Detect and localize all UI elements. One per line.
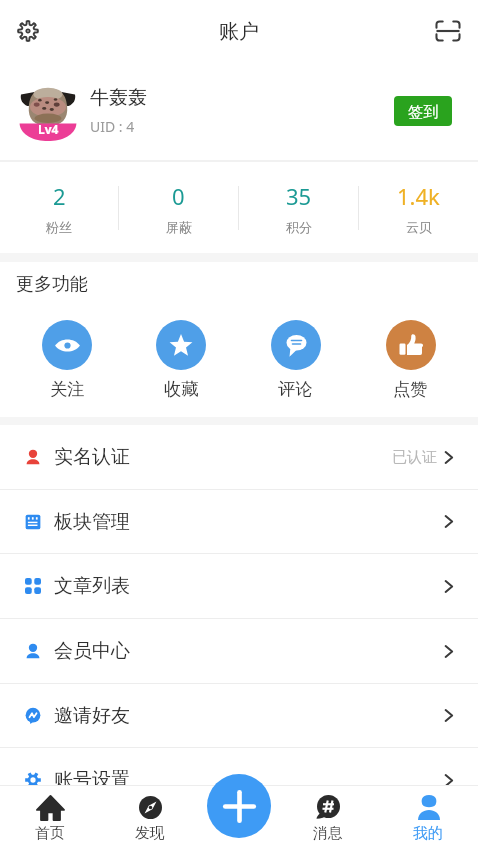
button[interactable]: 首页 (0, 785, 100, 850)
staticText: UID : 4 (90, 117, 135, 136)
staticText: 邀请好友 (54, 704, 130, 728)
staticText: 屏蔽 (166, 219, 192, 235)
button[interactable]: 35 (239, 181, 358, 235)
staticText: 积分 (286, 219, 312, 235)
staticText: 评论 (278, 378, 313, 400)
button[interactable]: 实名认证 (0, 425, 478, 489)
staticText: 我的 (413, 824, 443, 843)
staticText: 收藏 (164, 378, 199, 400)
button[interactable]: 点赞 (353, 320, 468, 400)
button[interactable]: 0 (119, 181, 238, 235)
button[interactable]: Add post (207, 774, 271, 838)
staticText: 首页 (35, 824, 65, 843)
staticText: 关注 (50, 378, 85, 400)
staticText: 1.4k (397, 181, 440, 211)
button[interactable]: 会员中心 (0, 619, 478, 683)
button[interactable]: 我的 (378, 785, 478, 850)
staticText: 云贝 (406, 219, 432, 235)
button[interactable]: 文章列表 (0, 554, 478, 618)
staticText: 已认证 (392, 448, 437, 467)
button[interactable]: 2 (0, 181, 118, 235)
button[interactable]: 签到 (394, 96, 452, 126)
staticText: 0 (172, 181, 185, 211)
button[interactable]: 1.4k (359, 181, 478, 235)
button[interactable]: 关注 (10, 320, 124, 400)
staticText: 更多功能 (16, 273, 88, 296)
button[interactable]: 邀请好友 (0, 684, 478, 747)
button[interactable]: 账号设置 (0, 748, 478, 812)
button[interactable]: 板块管理 (0, 490, 478, 553)
staticText: 账户 (219, 19, 259, 44)
staticText: 点赞 (393, 378, 428, 400)
staticText: 2 (53, 181, 66, 211)
button[interactable]: 发现 (100, 785, 200, 850)
button[interactable]: 收藏 (124, 320, 238, 400)
staticText: 账号设置 (54, 768, 130, 792)
staticText: 签到 (408, 102, 439, 121)
staticText: 粉丝 (46, 219, 72, 235)
staticText: 发现 (135, 824, 165, 843)
button[interactable]: 评论 (238, 320, 353, 400)
staticText: 35 (286, 181, 312, 211)
button[interactable]: Lv4 (0, 62, 478, 160)
button[interactable]: Settings (8, 11, 48, 51)
staticText: Lv4 (38, 121, 59, 137)
staticText: 会员中心 (54, 639, 130, 663)
staticText: 板块管理 (54, 510, 130, 534)
staticText: 牛轰轰 (90, 86, 147, 110)
button[interactable]: 消息 (278, 785, 378, 850)
staticText: 消息 (313, 824, 343, 843)
staticText: 实名认证 (54, 445, 130, 469)
staticText: 文章列表 (54, 574, 130, 598)
button[interactable]: Scan QR code (428, 11, 468, 51)
